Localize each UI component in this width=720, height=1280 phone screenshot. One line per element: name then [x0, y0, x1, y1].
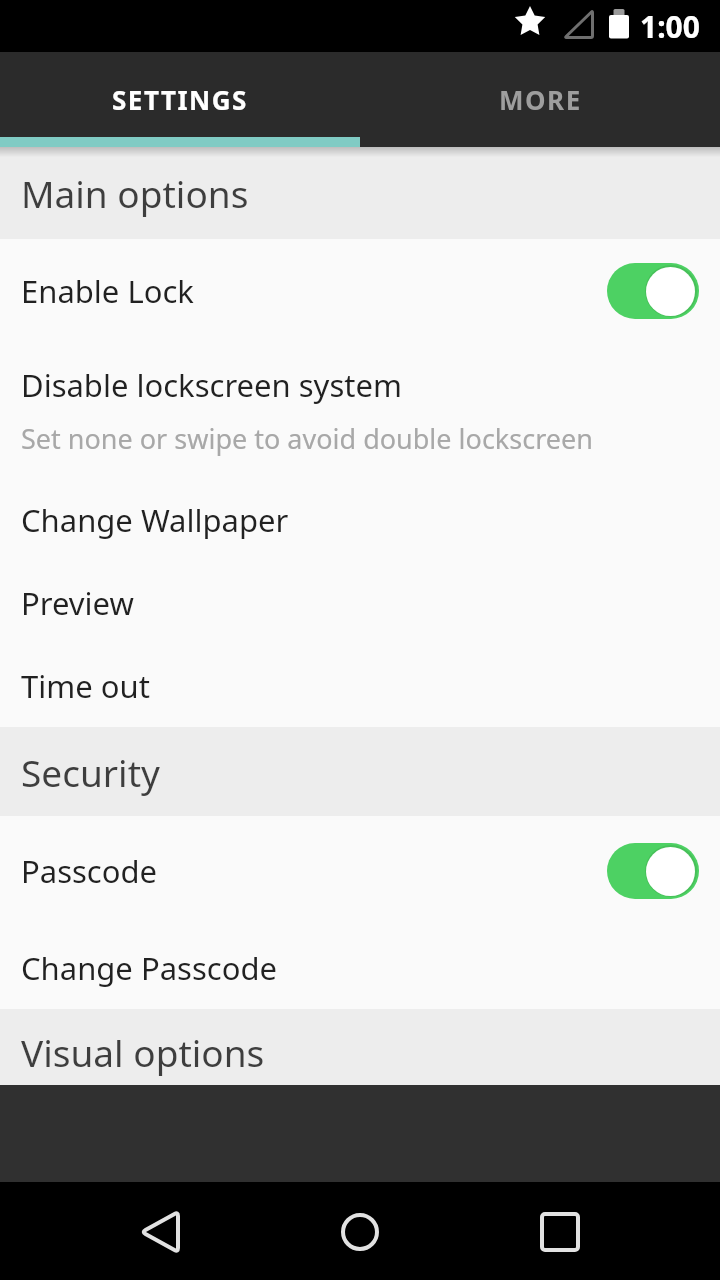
button[interactable]: Time out [0, 644, 720, 727]
staticText: Disable lockscreen system [21, 364, 402, 406]
staticText: Change Wallpaper [21, 499, 289, 541]
button[interactable] [240, 1182, 480, 1280]
button[interactable]: Disable lockscreen system [0, 343, 720, 478]
staticText: Enable Lock [21, 270, 607, 312]
button[interactable] [0, 1182, 240, 1280]
staticText: Passcode [21, 850, 607, 892]
staticText: Visual options [21, 1027, 265, 1077]
staticText: 1:00 [640, 6, 700, 47]
staticText: Security [21, 747, 160, 797]
button[interactable] [480, 1182, 720, 1280]
button[interactable]: Preview [0, 561, 720, 644]
button[interactable]: MORE [360, 52, 720, 147]
staticText: Preview [21, 582, 134, 624]
button[interactable]: Enable Lock [0, 239, 720, 343]
staticText: Main options [21, 168, 249, 218]
staticText: Set none or swipe to avoid double locksc… [21, 420, 593, 457]
button[interactable]: Passcode [0, 816, 720, 926]
staticText: Change Passcode [21, 947, 277, 989]
button[interactable]: SETTINGS [0, 52, 360, 147]
button[interactable]: Change Wallpaper [0, 478, 720, 561]
staticText: MORE [499, 82, 582, 117]
button[interactable]: Change Passcode [0, 926, 720, 1009]
staticText: Time out [21, 665, 150, 707]
staticText: SETTINGS [112, 82, 248, 117]
